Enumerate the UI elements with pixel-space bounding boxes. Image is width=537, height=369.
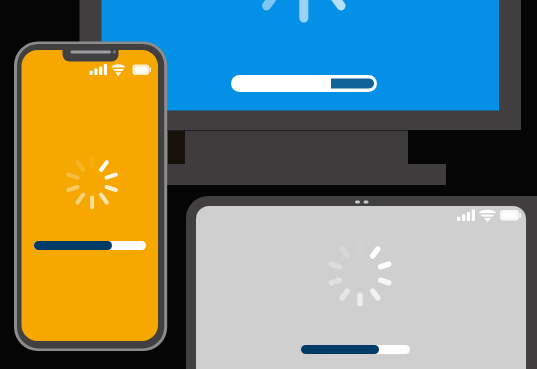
button[interactable]: Devices loading illustration (0, 0, 537, 369)
